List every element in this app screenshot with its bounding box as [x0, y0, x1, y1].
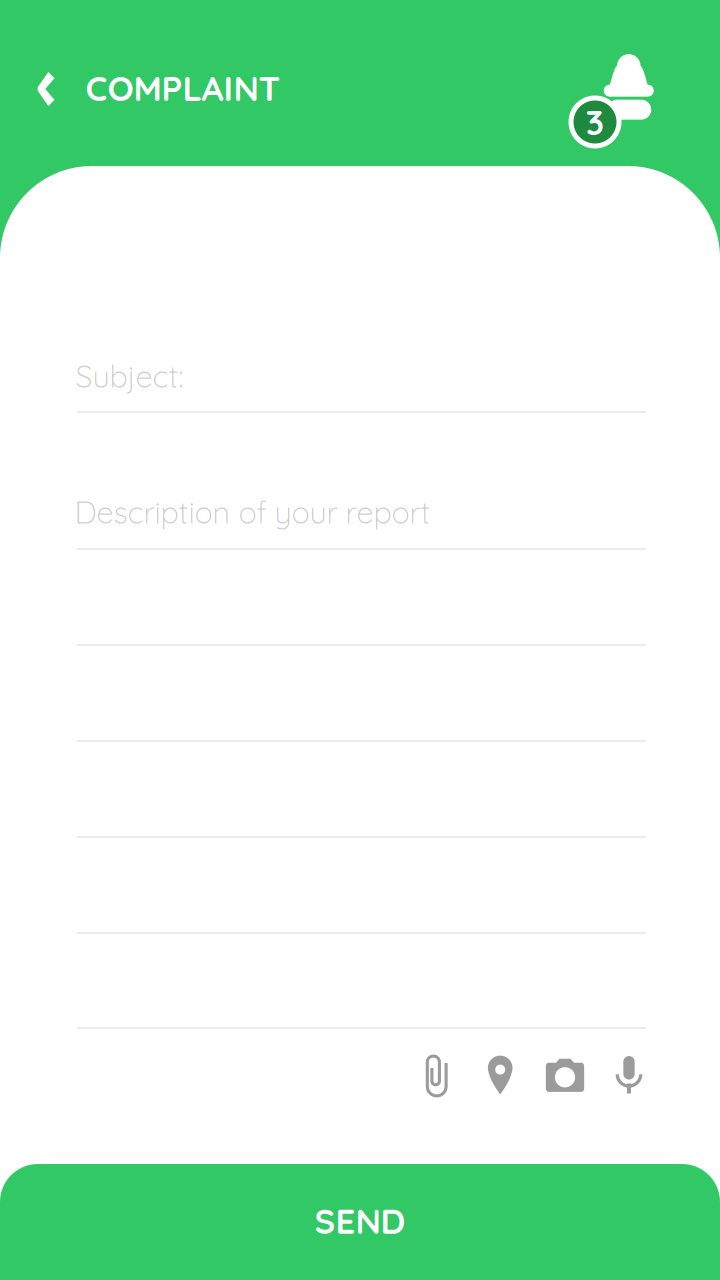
button[interactable]: SEND [0, 1164, 720, 1280]
staticText: 3 [585, 100, 604, 144]
staticText: SEND [314, 1199, 405, 1242]
button[interactable]: Add location [472, 1047, 528, 1103]
button[interactable]: Back [10, 54, 80, 124]
button[interactable]: Attach file [409, 1047, 465, 1103]
staticText: COMPLAINT [85, 66, 280, 110]
button[interactable]: Record audio [601, 1047, 657, 1103]
button[interactable]: Take photo [537, 1047, 593, 1103]
staticText: Description of your report [74, 493, 430, 531]
button[interactable]: Notifications [568, 54, 656, 150]
staticText: Subject: [75, 357, 183, 395]
